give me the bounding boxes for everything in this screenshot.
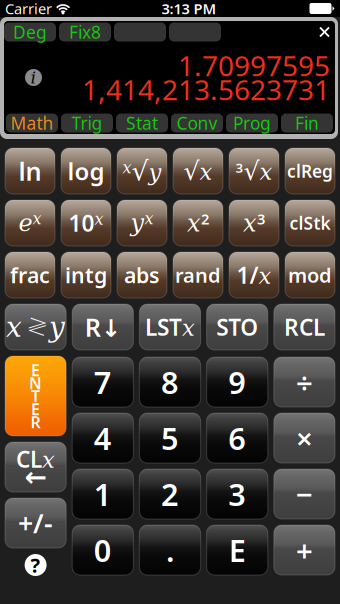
button[interactable]: one over x — [229, 252, 279, 298]
staticText: +/- — [18, 505, 53, 541]
button[interactable]: clReg — [285, 148, 335, 194]
button[interactable]: Fin — [281, 113, 333, 132]
staticText: E — [31, 398, 40, 420]
button[interactable]: 1 — [72, 469, 133, 519]
button[interactable]: Info — [25, 69, 42, 86]
staticText: 6 — [228, 418, 246, 458]
staticText: Carrier — [5, 0, 52, 18]
button[interactable]: 0 — [72, 525, 133, 575]
button[interactable]: x root of y — [117, 148, 167, 194]
staticText: Deg — [13, 20, 47, 43]
staticText: i — [30, 67, 36, 88]
staticText: 0 — [94, 530, 112, 570]
button[interactable]: log — [61, 148, 111, 194]
staticText: E — [31, 359, 40, 381]
button[interactable]: + — [274, 525, 335, 575]
button[interactable]: intg — [61, 252, 111, 298]
staticText: 8 — [161, 362, 179, 402]
staticText: 3√x — [235, 157, 272, 185]
button[interactable]: . — [139, 525, 201, 575]
button[interactable]: Help — [25, 554, 47, 576]
button[interactable]: cube root of x — [229, 148, 279, 194]
staticText: 3:13 PM — [161, 0, 216, 18]
button[interactable]: − — [274, 469, 335, 519]
button[interactable]: 4 — [72, 413, 133, 463]
staticText: Conv — [176, 111, 217, 134]
button[interactable]: abs — [117, 252, 167, 298]
button[interactable]: Conv — [171, 113, 223, 132]
staticText: STO — [216, 312, 258, 342]
button[interactable]: Fix8 — [59, 22, 111, 41]
button[interactable]: Close — [314, 21, 335, 42]
staticText: 1.70997595 — [178, 47, 330, 84]
staticText: Trig — [71, 111, 102, 134]
button[interactable]: 6 — [207, 413, 268, 463]
staticText: ÷ — [296, 362, 313, 401]
staticText: x≷y — [6, 311, 65, 343]
staticText: T — [31, 385, 40, 407]
button[interactable]: Prog — [226, 113, 278, 132]
staticText: frac — [10, 261, 50, 289]
button[interactable]: Deg — [4, 22, 56, 41]
button[interactable]: square root of x — [173, 148, 223, 194]
staticText: mod — [288, 262, 332, 288]
button[interactable] — [114, 22, 166, 41]
button[interactable]: STO — [207, 304, 268, 350]
button[interactable]: x squared — [173, 200, 223, 246]
button[interactable]: rand — [173, 252, 223, 298]
staticText: Fix8 — [69, 20, 101, 43]
button[interactable]: 9 — [207, 357, 268, 407]
staticText: E — [229, 530, 246, 570]
button[interactable]: +/- — [5, 498, 66, 548]
button[interactable]: Math — [6, 113, 58, 132]
button[interactable]: e to the x — [5, 200, 55, 246]
staticText: N — [29, 372, 42, 394]
button[interactable]: roll down — [72, 304, 133, 350]
staticText: clStk — [289, 211, 330, 234]
staticText: Fin — [295, 111, 319, 134]
button[interactable]: 8 — [139, 357, 201, 407]
staticText: intg — [65, 261, 107, 289]
staticText: clReg — [287, 159, 333, 182]
button[interactable]: last x — [139, 304, 201, 350]
staticText: ← — [25, 462, 47, 492]
staticText: R↓ — [85, 310, 121, 344]
staticText: + — [296, 530, 313, 569]
button[interactable]: ÷ — [274, 357, 335, 407]
button[interactable]: ln — [5, 148, 55, 194]
staticText: R — [31, 411, 41, 433]
button[interactable]: x cubed — [229, 200, 279, 246]
button[interactable] — [169, 22, 221, 41]
staticText: CLx — [16, 444, 55, 474]
button[interactable]: 7 — [72, 357, 133, 407]
button[interactable]: Enter — [5, 356, 66, 436]
button[interactable]: × — [274, 413, 335, 463]
button[interactable]: Stat — [116, 113, 168, 132]
button[interactable]: ten to the x — [61, 200, 111, 246]
staticText: 1/x — [236, 260, 271, 290]
button[interactable]: clStk — [285, 200, 335, 246]
staticText: Prog — [233, 111, 271, 134]
button[interactable]: E — [207, 525, 268, 575]
staticText: ln — [18, 154, 41, 188]
staticText: − — [296, 474, 313, 513]
staticText: √x — [183, 157, 212, 185]
staticText: 4 — [94, 418, 112, 458]
button[interactable]: exchange x and y — [5, 304, 66, 350]
button[interactable]: frac — [5, 252, 55, 298]
staticText: RCL — [284, 312, 325, 342]
staticText: log — [67, 155, 104, 187]
staticText: LSTx — [145, 312, 195, 342]
button[interactable]: y to the x — [117, 200, 167, 246]
button[interactable]: 3 — [207, 469, 268, 519]
staticText: 1,414,213.5623731 — [82, 71, 330, 108]
button[interactable]: 5 — [139, 413, 201, 463]
button[interactable]: RCL — [274, 304, 335, 350]
button[interactable]: clear x — [5, 442, 66, 492]
staticText: 9 — [228, 362, 246, 402]
staticText: × — [296, 418, 313, 457]
button[interactable]: 2 — [139, 469, 201, 519]
button[interactable]: Trig — [61, 113, 113, 132]
staticText: x3 — [243, 209, 265, 237]
button[interactable]: mod — [285, 252, 335, 298]
